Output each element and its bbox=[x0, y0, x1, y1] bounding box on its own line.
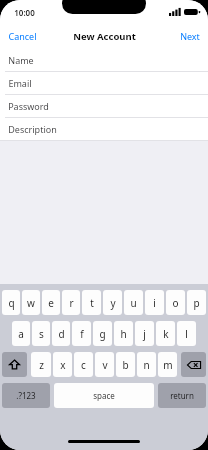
staticText: n bbox=[143, 358, 150, 372]
staticText: t bbox=[90, 296, 94, 310]
staticText: Cancel bbox=[8, 30, 37, 42]
staticText: u bbox=[130, 296, 137, 310]
staticText: l bbox=[185, 327, 188, 341]
staticText: b bbox=[122, 358, 129, 372]
staticText: o bbox=[172, 296, 179, 310]
staticText: m bbox=[163, 358, 173, 372]
staticText: r bbox=[69, 296, 74, 310]
button[interactable]: r bbox=[62, 290, 80, 315]
button[interactable]: j bbox=[135, 321, 154, 346]
button[interactable]: o bbox=[166, 290, 185, 315]
button[interactable]: z bbox=[31, 352, 51, 377]
staticText: v bbox=[102, 358, 108, 372]
staticText: a bbox=[18, 327, 24, 341]
button[interactable]: h bbox=[114, 321, 133, 346]
staticText: c bbox=[81, 358, 86, 372]
staticText: j bbox=[143, 327, 146, 341]
button[interactable]: a bbox=[12, 321, 30, 346]
button[interactable]: w bbox=[22, 290, 40, 315]
button[interactable]: n bbox=[137, 352, 156, 377]
staticText: i bbox=[153, 296, 156, 310]
button[interactable]: b bbox=[116, 352, 135, 377]
staticText: k bbox=[163, 327, 169, 341]
button[interactable]: return bbox=[158, 383, 206, 408]
staticText: d bbox=[58, 327, 65, 341]
staticText: 10:00 bbox=[14, 7, 35, 18]
button[interactable]: Name bbox=[0, 48, 208, 71]
button[interactable]: l bbox=[177, 321, 196, 346]
button[interactable]: Cancel bbox=[0, 24, 45, 48]
staticText: f bbox=[80, 327, 84, 341]
staticText: q bbox=[8, 296, 15, 310]
button[interactable]: Shift bbox=[2, 352, 27, 377]
button[interactable]: m bbox=[158, 352, 177, 377]
button[interactable]: space bbox=[54, 383, 154, 408]
button[interactable]: f bbox=[72, 321, 91, 346]
button[interactable]: k bbox=[156, 321, 175, 346]
staticText: p bbox=[193, 296, 200, 310]
staticText: .?123 bbox=[16, 390, 36, 401]
button[interactable]: g bbox=[93, 321, 112, 346]
button[interactable]: Email bbox=[0, 72, 208, 94]
button[interactable]: s bbox=[32, 321, 50, 346]
button[interactable]: Backspace bbox=[181, 352, 206, 377]
button[interactable]: e bbox=[42, 290, 60, 315]
staticText: x bbox=[60, 358, 66, 372]
button[interactable]: Next bbox=[172, 24, 208, 48]
staticText: Next bbox=[180, 30, 200, 42]
button[interactable]: Description bbox=[0, 118, 208, 140]
button[interactable]: q bbox=[2, 290, 20, 315]
staticText: Password bbox=[8, 100, 49, 112]
staticText: Email bbox=[8, 77, 32, 89]
button[interactable]: c bbox=[74, 352, 93, 377]
staticText: e bbox=[48, 296, 54, 310]
button[interactable]: y bbox=[103, 290, 122, 315]
staticText: s bbox=[39, 327, 44, 341]
button[interactable]: .?123 bbox=[2, 383, 50, 408]
button[interactable]: d bbox=[52, 321, 70, 346]
staticText: y bbox=[110, 296, 116, 310]
button[interactable]: t bbox=[82, 290, 101, 315]
staticText: g bbox=[99, 327, 106, 341]
button[interactable]: i bbox=[145, 290, 164, 315]
button[interactable]: x bbox=[53, 352, 72, 377]
staticText: return bbox=[170, 390, 194, 401]
staticText: Description bbox=[8, 123, 57, 135]
staticText: z bbox=[39, 358, 44, 372]
button[interactable]: p bbox=[187, 290, 206, 315]
button[interactable]: v bbox=[95, 352, 114, 377]
staticText: New Account bbox=[73, 30, 136, 43]
staticText: Name bbox=[8, 54, 34, 66]
button[interactable]: Password bbox=[0, 95, 208, 117]
button[interactable]: u bbox=[124, 290, 143, 315]
staticText: w bbox=[27, 296, 35, 310]
staticText: h bbox=[120, 327, 127, 341]
staticText: space bbox=[93, 390, 115, 401]
